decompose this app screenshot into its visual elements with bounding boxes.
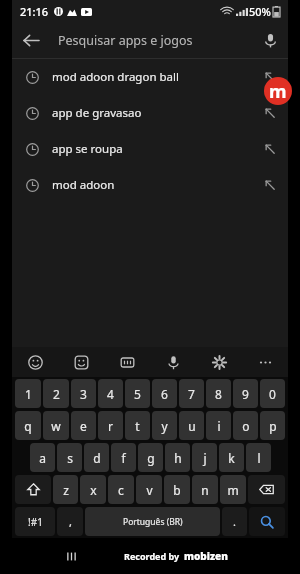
staticText: ,: [69, 514, 72, 529]
button[interactable]: Voice input: [150, 347, 196, 377]
staticText: 4: [107, 386, 114, 402]
button[interactable]: 1: [15, 379, 41, 408]
staticText: mod adoon dragon ball: [52, 69, 252, 85]
staticText: app de gravasao: [52, 105, 252, 121]
button[interactable]: Pesquisar apps e jogos: [58, 22, 252, 58]
button[interactable]: More: [242, 347, 288, 377]
button[interactable]: 2: [43, 379, 69, 408]
staticText: g: [147, 450, 155, 466]
button[interactable]: Back: [12, 22, 48, 58]
staticText: Português (BR): [123, 516, 183, 528]
button[interactable]: a: [30, 443, 55, 472]
staticText: 9: [242, 386, 249, 402]
button[interactable]: l: [246, 443, 271, 472]
staticText: 3: [80, 386, 87, 402]
staticText: mobizen: [184, 549, 228, 563]
staticText: Pesquisar apps e jogos: [58, 32, 193, 49]
staticText: n: [201, 482, 209, 498]
button[interactable]: t: [125, 411, 150, 440]
button[interactable]: d: [84, 443, 109, 472]
staticText: e: [80, 418, 87, 434]
button[interactable]: y: [152, 411, 177, 440]
button[interactable]: m: [220, 475, 246, 504]
button[interactable]: g: [138, 443, 163, 472]
button[interactable]: s: [57, 443, 82, 472]
button[interactable]: 3: [71, 379, 96, 408]
button[interactable]: 5: [125, 379, 150, 408]
button[interactable]: j: [192, 443, 217, 472]
staticText: 0: [269, 386, 276, 402]
button[interactable]: Backspace: [248, 475, 285, 504]
staticText: v: [146, 482, 153, 498]
button[interactable]: mod adoon dragon ball: [12, 59, 288, 95]
staticText: a: [39, 450, 46, 466]
button[interactable]: app de gravasao: [12, 95, 288, 131]
button[interactable]: x: [80, 475, 106, 504]
staticText: !#1: [28, 515, 43, 529]
staticText: d: [93, 450, 101, 466]
button[interactable]: n: [192, 475, 218, 504]
staticText: q: [24, 418, 32, 434]
staticText: y: [161, 418, 168, 434]
staticText: 50%: [249, 4, 271, 19]
button[interactable]: mod adoon: [12, 167, 288, 203]
staticText: mod adoon: [52, 177, 252, 193]
staticText: l: [257, 450, 261, 466]
staticText: 5: [134, 386, 141, 402]
button[interactable]: Shift: [15, 475, 51, 504]
staticText: b: [173, 482, 181, 498]
staticText: s: [67, 450, 73, 466]
staticText: 7: [188, 386, 195, 402]
staticText: r: [108, 418, 113, 434]
staticText: w: [51, 418, 61, 434]
staticText: 8: [215, 386, 222, 402]
button[interactable]: Português (BR): [85, 507, 220, 536]
button[interactable]: r: [98, 411, 123, 440]
staticText: m: [269, 79, 287, 104]
button[interactable]: 6: [152, 379, 177, 408]
staticText: o: [242, 418, 250, 434]
button[interactable]: Recents: [58, 543, 84, 569]
button[interactable]: Stickers: [58, 347, 104, 377]
button[interactable]: q: [15, 411, 41, 440]
button[interactable]: .: [222, 507, 247, 536]
staticText: t: [135, 418, 140, 434]
button[interactable]: i: [206, 411, 231, 440]
button[interactable]: e: [71, 411, 96, 440]
button[interactable]: p: [260, 411, 285, 440]
button[interactable]: 7: [179, 379, 204, 408]
staticText: app se roupa: [52, 141, 252, 157]
staticText: u: [188, 418, 196, 434]
button[interactable]: w: [43, 411, 69, 440]
button[interactable]: c: [108, 475, 134, 504]
button[interactable]: f: [111, 443, 136, 472]
button[interactable]: ,: [57, 507, 83, 536]
button[interactable]: GIF: [104, 347, 150, 377]
button[interactable]: 9: [233, 379, 258, 408]
button[interactable]: o: [233, 411, 258, 440]
button[interactable]: app se roupa: [12, 131, 288, 167]
button[interactable]: 8: [206, 379, 231, 408]
button[interactable]: Settings: [196, 347, 242, 377]
button[interactable]: Search: [249, 507, 285, 536]
button[interactable]: Emoji: [12, 347, 58, 377]
button[interactable]: z: [53, 475, 78, 504]
staticText: p: [269, 418, 277, 434]
staticText: c: [118, 482, 124, 498]
button[interactable]: v: [136, 475, 162, 504]
staticText: 6: [161, 386, 168, 402]
button[interactable]: h: [165, 443, 190, 472]
staticText: 21:16: [20, 4, 49, 19]
button[interactable]: b: [164, 475, 190, 504]
button[interactable]: 4: [98, 379, 123, 408]
button[interactable]: k: [219, 443, 244, 472]
staticText: k: [228, 450, 235, 466]
staticText: m: [227, 482, 239, 498]
button[interactable]: !#1: [15, 507, 55, 536]
button[interactable]: Mobizen recorder: [264, 77, 292, 105]
staticText: 2: [53, 386, 60, 402]
button[interactable]: 0: [260, 379, 285, 408]
staticText: .: [233, 514, 236, 529]
button[interactable]: u: [179, 411, 204, 440]
button[interactable]: Voice search: [252, 22, 288, 58]
